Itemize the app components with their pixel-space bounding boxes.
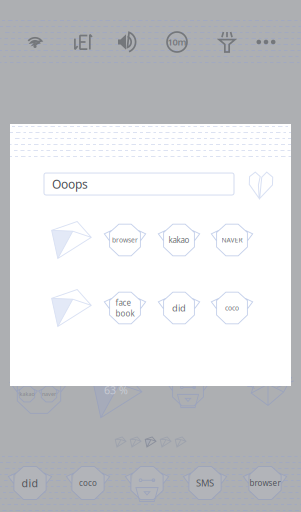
staticText: naver <box>42 390 56 398</box>
staticText: did <box>21 476 38 490</box>
button[interactable]: kakao <box>16 383 38 405</box>
staticText: kakao <box>19 390 34 398</box>
button[interactable]: Send <box>49 218 93 262</box>
button[interactable]: Wi-Fi <box>18 25 52 59</box>
staticText: kakao <box>168 235 189 245</box>
button[interactable]: did <box>7 460 53 506</box>
staticText: SMS <box>196 477 214 489</box>
staticText: coco <box>225 304 239 312</box>
button[interactable]: App <box>124 460 170 506</box>
button[interactable]: Send <box>114 436 126 448</box>
button[interactable]: face book <box>103 286 147 330</box>
staticText: browser <box>112 236 138 244</box>
button[interactable]: Send <box>144 436 156 448</box>
button[interactable]: Send <box>90 368 144 422</box>
button[interactable]: did <box>157 286 201 330</box>
button[interactable]: SMS <box>182 460 228 506</box>
button[interactable]: App <box>166 368 210 412</box>
button[interactable]: naver <box>38 383 60 405</box>
button[interactable]: Airplane Mode <box>66 25 100 59</box>
button[interactable]: browser <box>103 218 147 262</box>
staticText: 10m <box>167 36 186 48</box>
staticText: coco <box>79 478 97 488</box>
staticText: NAVER <box>221 236 242 244</box>
button[interactable]: Origami <box>240 364 296 420</box>
button[interactable]: browser <box>242 460 288 506</box>
button[interactable]: Timer <box>160 25 194 59</box>
button[interactable]: Volume <box>111 25 145 59</box>
staticText: Ooops <box>52 176 88 192</box>
button[interactable]: Send <box>174 436 186 448</box>
staticText: browser <box>249 478 280 488</box>
button[interactable]: Flashlight <box>210 25 244 59</box>
staticText: did <box>172 302 186 314</box>
button[interactable]: Send <box>49 286 93 330</box>
button[interactable]: coco <box>65 460 111 506</box>
button[interactable]: Send <box>129 436 141 448</box>
button[interactable]: More <box>249 25 283 59</box>
button[interactable]: coco <box>210 286 254 330</box>
button[interactable]: Ooops <box>44 173 234 195</box>
button[interactable]: kakao <box>157 218 201 262</box>
button[interactable]: NAVER <box>210 218 254 262</box>
staticText: 63 % <box>104 383 128 397</box>
button[interactable]: Send <box>159 436 171 448</box>
staticText: face book <box>115 297 134 319</box>
